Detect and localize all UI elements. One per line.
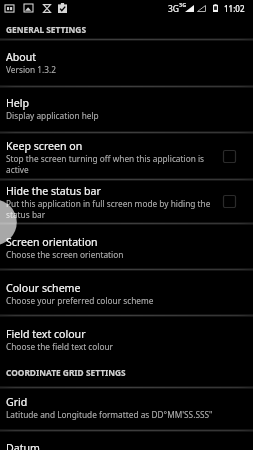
button[interactable]: Datum [0,431,253,450]
staticText: COORDINATE GRID SETTINGS [6,367,126,378]
button[interactable]: Grid [0,388,253,430]
staticText: Display application help [6,110,99,121]
staticText: 11:02 [224,3,245,14]
staticText: 3G [168,3,180,15]
staticText: About [6,50,37,64]
staticText: Help [6,96,30,110]
button[interactable]: Help [0,87,253,132]
staticText: Field text colour [6,327,86,341]
button[interactable]: Keep screen on [0,133,253,179]
button[interactable]: Hide the status bar [0,180,253,223]
button[interactable]: Field text colour [0,316,253,358]
staticText: Grid [6,395,28,409]
staticText: Hide the status bar [6,184,101,198]
staticText: Choose the screen orientation [6,249,124,260]
button[interactable]: About [0,40,253,86]
staticText: Choose the field text colour [6,341,114,352]
other: Keep screen on [221,148,238,165]
staticText: Colour scheme [6,281,81,295]
staticText: Put this application in full screen mode… [6,198,215,220]
staticText: Keep screen on [6,139,83,153]
button[interactable]: Screen orientation [0,224,253,269]
other: Hide the status bar [221,193,238,210]
staticText: 3G [179,1,187,8]
staticText: Stop the screen turning off when this ap… [6,153,215,175]
staticText: Choose your preferred colour scheme [6,295,154,306]
staticText: Screen orientation [6,235,98,249]
staticText: GENERAL SETTINGS [6,24,86,35]
staticText: Datum [6,441,40,450]
staticText: Version 1.3.2 [6,64,57,75]
staticText: Latitude and Longitude formatted as DD°M… [6,409,213,420]
button[interactable]: Colour scheme [0,270,253,315]
